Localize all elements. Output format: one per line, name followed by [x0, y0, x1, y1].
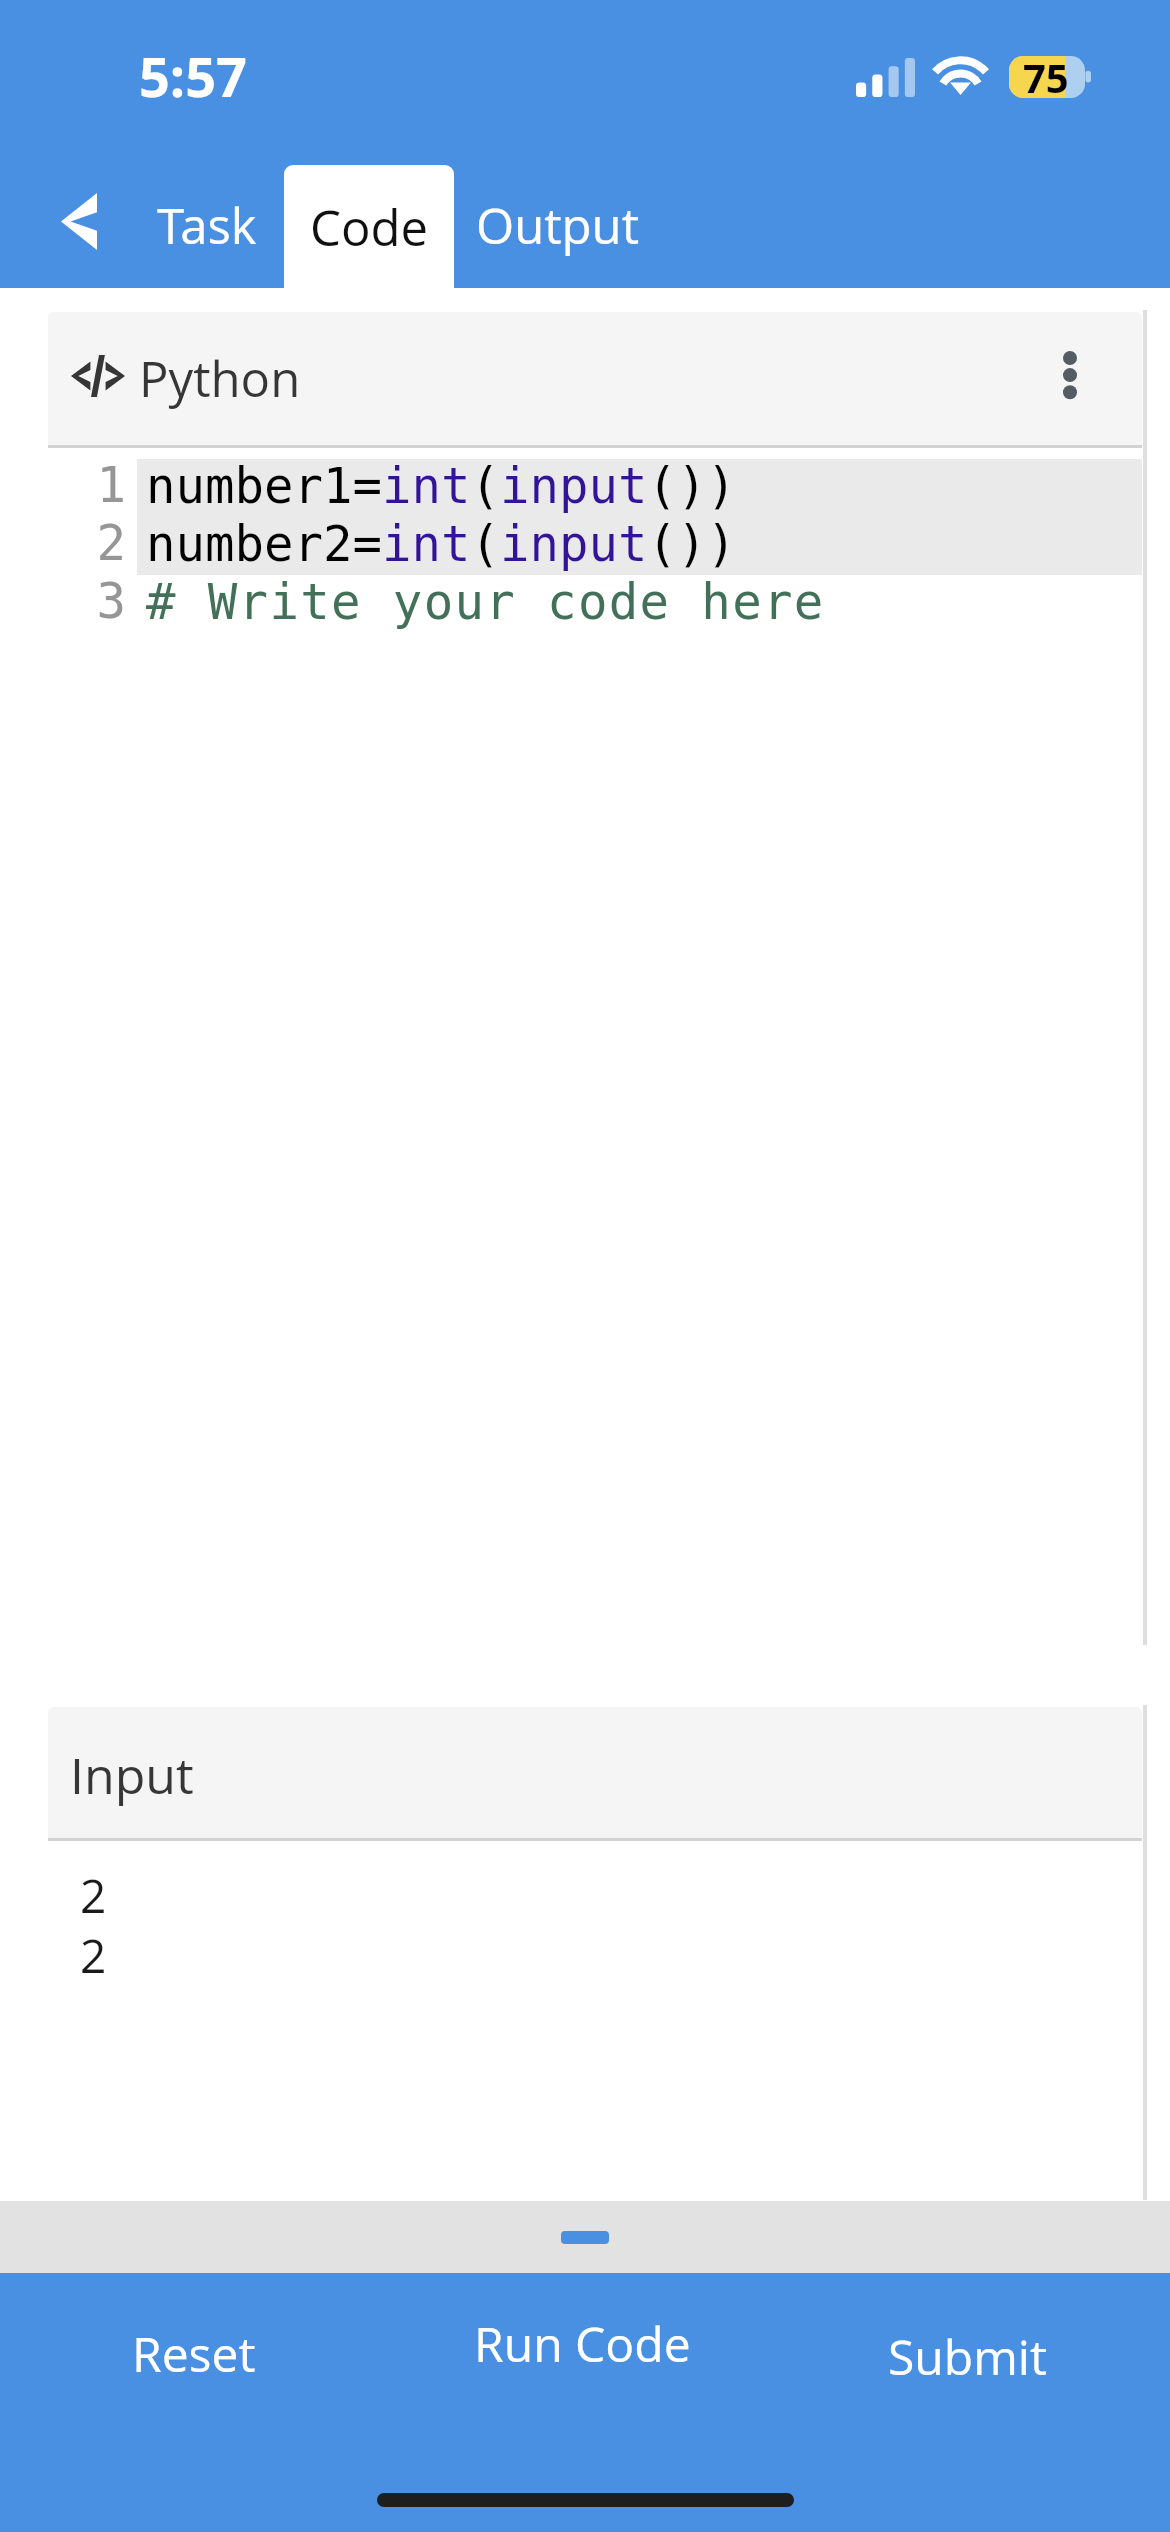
staticText: number2=int(input()) [146, 516, 737, 573]
button[interactable]: More options [1023, 325, 1117, 424]
button[interactable]: Reset [116, 2311, 272, 2396]
button[interactable]: Code [284, 165, 454, 288]
button[interactable]: Run Code [458, 2301, 707, 2386]
staticText: Submit [888, 2324, 1047, 2389]
staticText: Code [310, 194, 429, 261]
staticText: Reset [132, 2321, 256, 2386]
button[interactable]: Submit [872, 2314, 1063, 2399]
staticText: Task [157, 192, 257, 259]
staticText: 2 [80, 1864, 107, 1927]
staticText: # Write your code here [146, 574, 825, 631]
button[interactable]: Back [36, 171, 122, 271]
button[interactable]: Output [460, 178, 655, 273]
staticText: 1 [48, 457, 126, 514]
button[interactable]: Task [141, 178, 273, 273]
staticText: Run Code [474, 2311, 691, 2376]
staticText: 2 [48, 515, 126, 572]
staticText: Output [476, 192, 639, 259]
staticText: 2 [80, 1924, 107, 1987]
staticText: Python [139, 345, 301, 412]
staticText: 5:57 [139, 39, 247, 113]
staticText: number1=int(input()) [146, 458, 737, 515]
staticText: Input [70, 1741, 194, 1809]
staticText: 75 [1023, 50, 1069, 104]
staticText: 3 [48, 573, 126, 630]
